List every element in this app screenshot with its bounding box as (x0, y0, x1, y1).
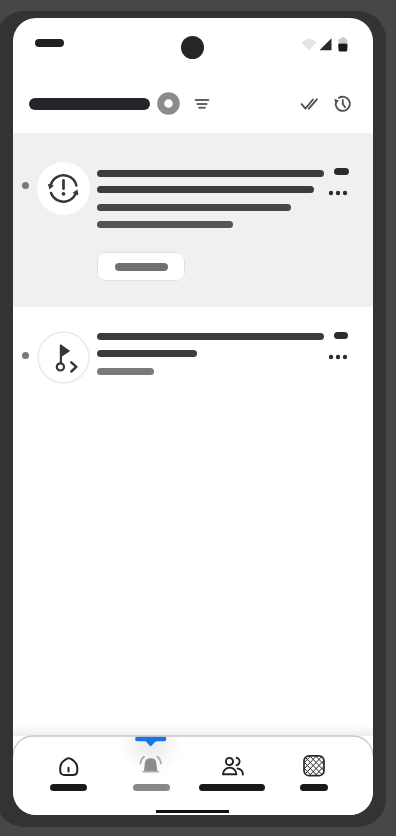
button[interactable] (321, 348, 353, 366)
button[interactable] (321, 184, 353, 202)
button[interactable] (296, 90, 324, 118)
button[interactable] (28, 740, 110, 812)
button[interactable] (188, 90, 216, 118)
button[interactable] (157, 92, 180, 115)
button[interactable] (97, 252, 185, 281)
button[interactable] (192, 740, 274, 812)
button[interactable] (329, 90, 357, 118)
button[interactable] (13, 307, 373, 408)
button[interactable] (110, 740, 192, 812)
button[interactable] (13, 133, 373, 307)
button[interactable] (273, 740, 355, 812)
